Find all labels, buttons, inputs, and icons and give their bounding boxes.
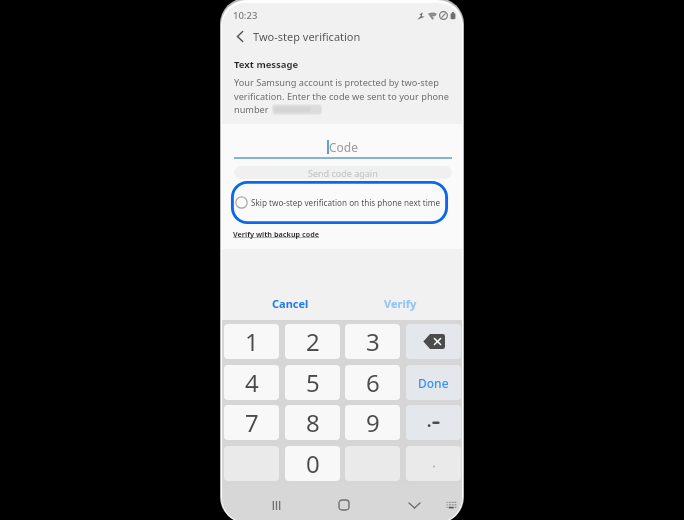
button[interactable]: Back: [230, 26, 250, 46]
button[interactable]: Verify: [375, 292, 425, 314]
button[interactable]: Done: [406, 365, 461, 400]
staticText: Skip two-step verification on this phone…: [251, 197, 441, 208]
staticText: Send code again: [308, 167, 378, 179]
button[interactable]: Dot dash: [406, 405, 461, 440]
button[interactable]: 0: [285, 446, 340, 481]
button[interactable]: Skip two-step verification on this phone…: [235, 181, 444, 224]
staticText: Code: [329, 139, 358, 155]
staticText: 8: [306, 406, 320, 439]
staticText: 10:23: [233, 9, 258, 22]
button[interactable]: 2: [285, 324, 340, 359]
staticText: 2: [306, 325, 320, 358]
button[interactable]: 9: [345, 405, 400, 440]
button[interactable]: 8: [285, 405, 340, 440]
staticText: Text message: [234, 58, 299, 71]
other: Dot dash: [427, 417, 441, 429]
button[interactable]: Send code again: [234, 166, 452, 179]
button[interactable]: 4: [224, 365, 279, 400]
button[interactable]: Verify with backup code: [233, 229, 320, 239]
staticText: Two-step verification: [253, 29, 361, 44]
button[interactable]: Recent apps: [268, 497, 284, 513]
other: Comma: [430, 459, 438, 469]
button[interactable]: 6: [345, 365, 400, 400]
staticText: 5: [306, 366, 320, 399]
staticText: 6: [366, 366, 380, 399]
button[interactable]: 7: [224, 405, 279, 440]
staticText: Cancel: [272, 296, 309, 311]
other: Backspace: [423, 334, 445, 349]
button[interactable]: Home: [336, 497, 352, 513]
staticText: Done: [418, 375, 449, 391]
staticText: 3: [366, 325, 380, 358]
button[interactable]: 5: [285, 365, 340, 400]
staticText: Verify: [384, 296, 417, 311]
staticText: 0: [306, 447, 320, 480]
staticText: 1: [245, 325, 259, 358]
staticText: Your Samsung account is protected by two…: [234, 76, 456, 115]
button[interactable]: 3: [345, 324, 400, 359]
button[interactable]: Hide keyboard: [406, 497, 422, 513]
staticText: Verify with backup code: [233, 229, 320, 239]
staticText: 7: [245, 406, 259, 439]
button[interactable]: Cancel: [262, 292, 318, 314]
button[interactable]: Backspace: [406, 324, 461, 359]
button[interactable]: Change keyboard: [444, 498, 458, 512]
staticText: 9: [366, 406, 380, 439]
staticText: 4: [245, 366, 259, 399]
button[interactable]: 1: [224, 324, 279, 359]
